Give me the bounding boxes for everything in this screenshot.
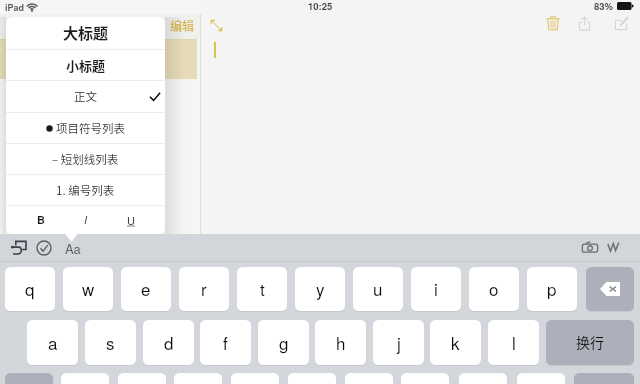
staticText: g (279, 330, 289, 354)
button[interactable]: Expand (210, 19, 223, 32)
button[interactable]: , (459, 373, 507, 384)
staticText: 10:25 (308, 0, 333, 13)
button[interactable]: w (63, 267, 113, 311)
button[interactable]: o (469, 267, 519, 311)
button[interactable]: Handwriting (605, 239, 621, 255)
staticText: f (223, 330, 228, 354)
staticText: B (37, 212, 45, 228)
staticText: I (84, 212, 88, 228)
button[interactable]: B (18, 206, 63, 234)
button[interactable]: – 短划线列表 (6, 144, 165, 174)
staticText: s (106, 330, 115, 354)
button[interactable]: i (411, 267, 461, 311)
button[interactable]: y (295, 267, 345, 311)
button[interactable]: z (61, 373, 109, 384)
button[interactable]: 换行 (546, 320, 634, 365)
button[interactable]: t (237, 267, 287, 311)
staticText: p (547, 276, 557, 300)
button[interactable] (574, 373, 634, 384)
button[interactable]: s (85, 320, 136, 365)
staticText: – 短划线列表 (52, 151, 119, 168)
staticText: q (25, 276, 35, 300)
button[interactable]: e (121, 267, 171, 311)
button[interactable]: h (315, 320, 366, 365)
staticText: w (82, 276, 95, 300)
button[interactable]: l (488, 320, 539, 365)
staticText: i (434, 276, 438, 300)
button[interactable]: 大标题 (6, 17, 165, 49)
button[interactable]: n (345, 373, 393, 384)
staticText: 大标题 (63, 22, 109, 44)
button[interactable]: d (143, 320, 194, 365)
button[interactable]: r (179, 267, 229, 311)
button[interactable] (5, 373, 53, 384)
button[interactable]: U (108, 206, 153, 234)
button[interactable]: 编辑 (170, 17, 195, 34)
button[interactable]: j (373, 320, 424, 365)
staticText: U (127, 212, 135, 228)
staticText: 83% (594, 0, 614, 13)
button[interactable] (586, 267, 634, 311)
staticText: a (48, 330, 58, 354)
button[interactable]: Undo (10, 239, 27, 256)
button[interactable]: I (63, 206, 108, 234)
staticText: e (141, 276, 151, 300)
button[interactable]: m (401, 373, 449, 384)
button[interactable]: g (258, 320, 309, 365)
staticText: 编辑 (170, 17, 195, 34)
button[interactable]: a (27, 320, 78, 365)
staticText: iPad (5, 1, 24, 14)
staticText: l (512, 330, 516, 354)
button[interactable]: 正文 (6, 81, 165, 112)
button[interactable]: 项目符号列表 (6, 113, 165, 143)
staticText: t (260, 276, 265, 300)
button[interactable]: 小标题 (6, 50, 165, 80)
staticText: 1. 编号列表 (56, 182, 115, 199)
staticText: h (336, 330, 346, 354)
button[interactable]: u (353, 267, 403, 311)
staticText: k (451, 330, 460, 354)
staticText: y (316, 276, 325, 300)
staticText: 小标题 (66, 56, 106, 75)
button[interactable]: Camera (582, 240, 598, 256)
staticText: r (201, 276, 207, 300)
staticText: u (373, 276, 383, 300)
button[interactable]: Checklist (36, 240, 52, 256)
button[interactable]: f (200, 320, 251, 365)
button[interactable]: x (118, 373, 166, 384)
button[interactable]: Delete (545, 15, 561, 31)
button[interactable]: q (5, 267, 55, 311)
button[interactable]: . (517, 373, 565, 384)
staticText: 正文 (74, 88, 97, 105)
staticText: Aa (65, 239, 81, 258)
staticText: 换行 (576, 332, 604, 352)
button[interactable]: Aa (62, 238, 83, 259)
button[interactable]: p (527, 267, 577, 311)
button[interactable]: c (174, 373, 222, 384)
button[interactable]: Share (577, 16, 592, 31)
button[interactable]: k (430, 320, 481, 365)
staticText: o (489, 276, 499, 300)
staticText: d (164, 330, 174, 354)
button[interactable]: b (288, 373, 336, 384)
button[interactable]: Compose (614, 17, 628, 31)
button[interactable]: 1. 编号列表 (6, 175, 165, 205)
staticText: j (397, 330, 401, 354)
button[interactable]: v (231, 373, 279, 384)
staticText: 项目符号列表 (56, 120, 125, 137)
